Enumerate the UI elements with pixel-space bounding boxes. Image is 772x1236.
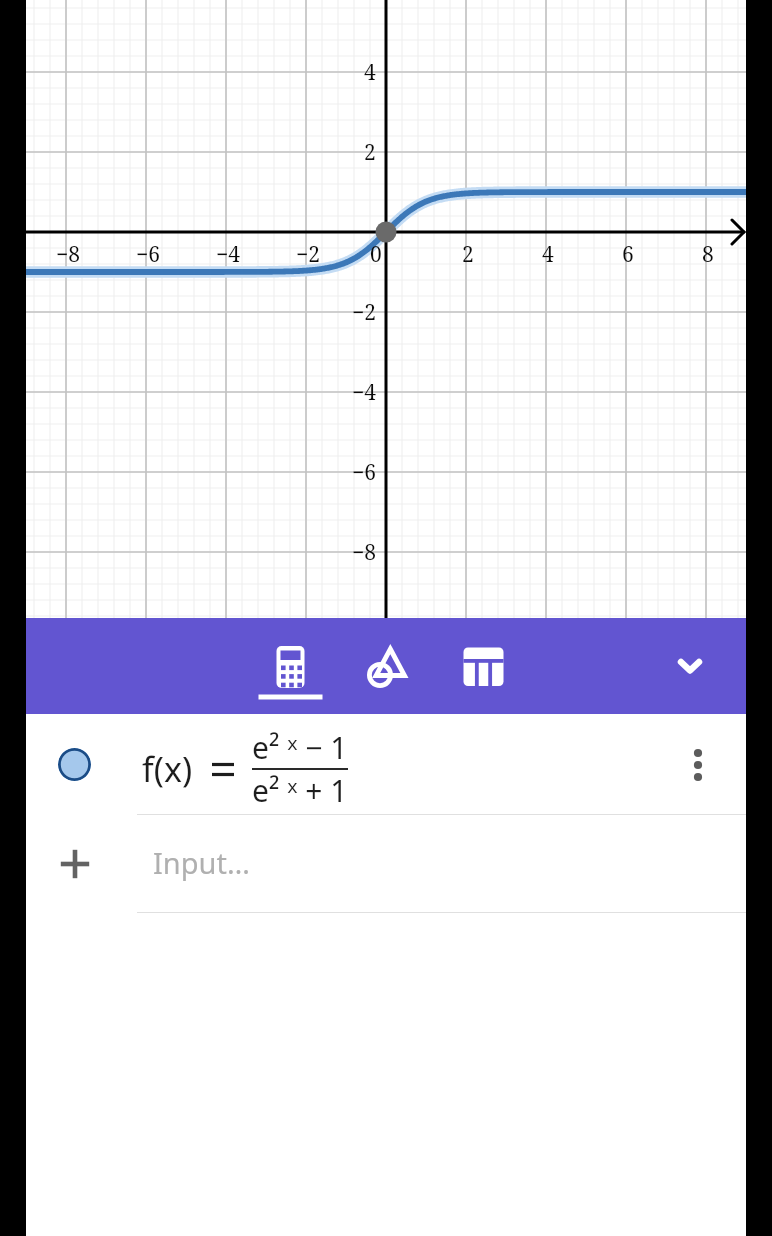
button[interactable]: Calculator [264,618,317,714]
staticText: Input… [153,843,250,882]
button[interactable]: Toggle visibility [26,714,746,815]
button[interactable]: More options [676,743,720,787]
button[interactable]: Add new input [54,843,96,885]
staticText: f(x) [142,746,193,792]
button[interactable]: Collapse toolbar [664,640,716,692]
button[interactable]: Table [457,618,510,714]
staticText: e² ˣ + 1 [252,770,348,811]
button[interactable]: Geometry [360,618,413,714]
button[interactable]: Add new input [26,815,746,913]
staticText: e² ˣ − 1 [252,727,348,768]
button[interactable]: Graphics view [26,0,746,618]
button[interactable]: Toggle visibility [58,748,91,781]
